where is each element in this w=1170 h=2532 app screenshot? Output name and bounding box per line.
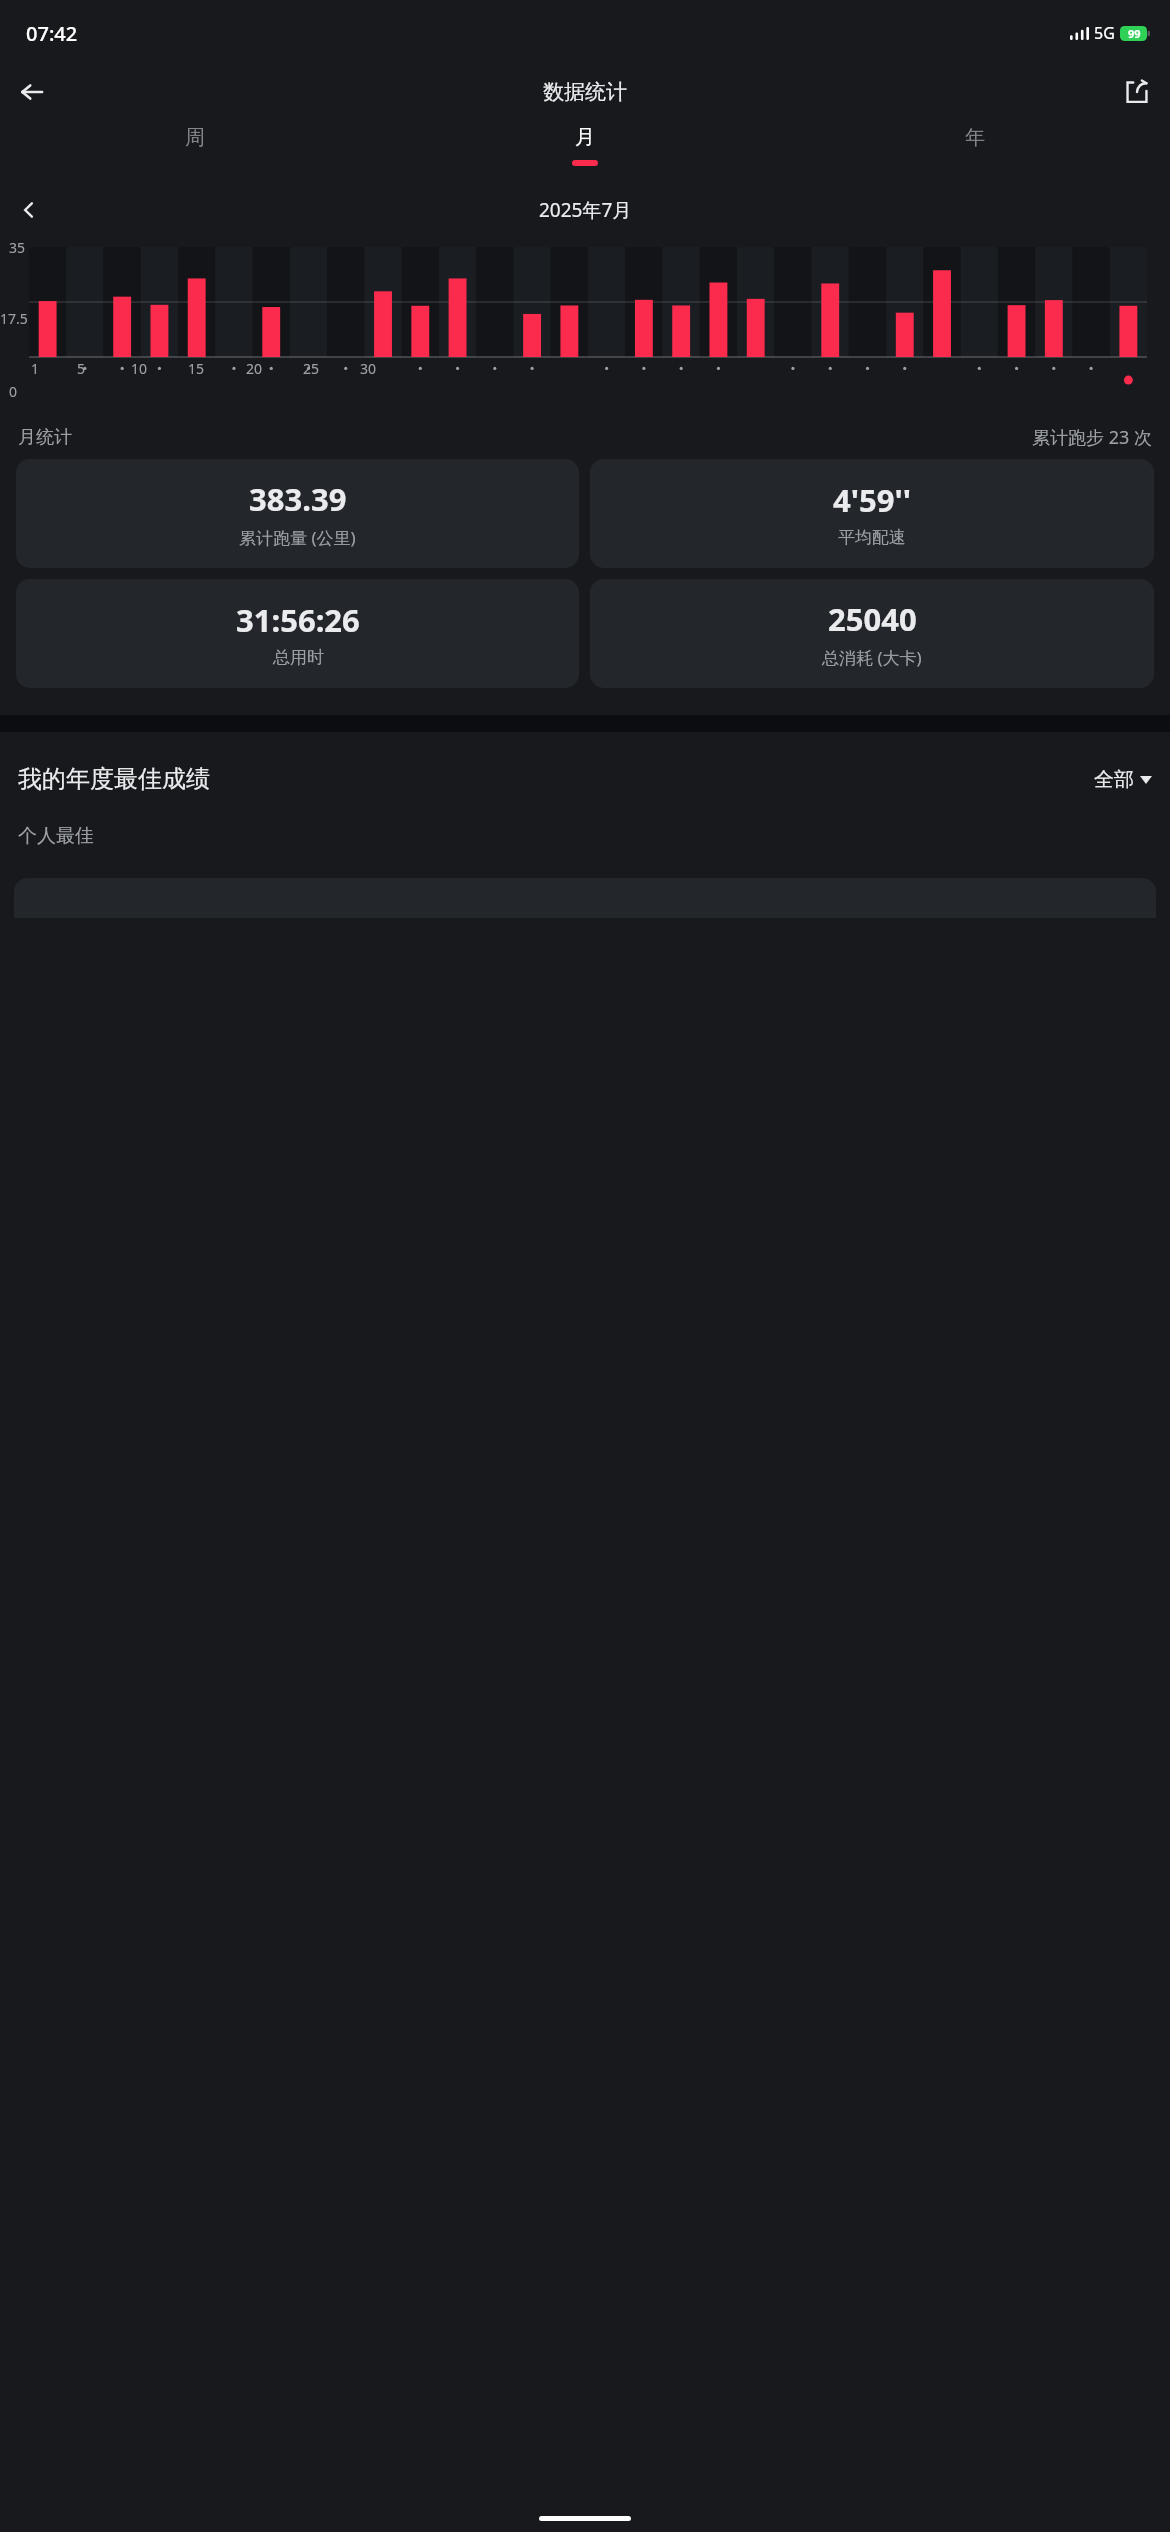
staticText: 全部 <box>1094 767 1134 792</box>
button[interactable]: 全部 <box>1094 767 1152 792</box>
button[interactable]: 周 <box>0 122 390 183</box>
staticText: 0 <box>9 382 18 401</box>
staticText: 25040 <box>828 598 917 640</box>
staticText: 月 <box>575 125 595 150</box>
staticText: 年 <box>965 125 985 150</box>
staticText: 383.39 <box>249 478 347 520</box>
staticText: 总用时 <box>273 647 324 668</box>
staticText: 我的年度最佳成绩 <box>18 764 210 794</box>
staticText: 10 <box>131 359 148 378</box>
staticText: 累计跑步 23 次 <box>1032 425 1152 450</box>
staticText: 平均配速 <box>838 527 906 548</box>
staticText: 4'59'' <box>833 479 911 521</box>
button[interactable]: 月 <box>390 122 780 183</box>
staticText: 99 <box>1128 26 1141 41</box>
button[interactable]: 25040 <box>590 579 1154 688</box>
staticText: 30 <box>360 359 377 378</box>
staticText: 25 <box>303 359 320 378</box>
staticText: 数据统计 <box>543 79 627 105</box>
staticText: 17.5 <box>0 309 28 328</box>
staticText: 总消耗 (大卡) <box>822 646 922 669</box>
button[interactable]: Share <box>1112 67 1162 117</box>
staticText: 07:42 <box>26 20 78 47</box>
button[interactable]: Back <box>6 66 58 118</box>
staticText: 20 <box>246 359 263 378</box>
staticText: 周 <box>185 125 205 150</box>
staticText: 35 <box>9 238 26 257</box>
staticText: 31:56:26 <box>236 599 360 641</box>
button[interactable]: 年 <box>780 122 1170 183</box>
staticText: 5G <box>1094 22 1115 44</box>
button[interactable]: 383.39 <box>16 459 579 568</box>
staticText: 1 <box>31 359 40 378</box>
button[interactable]: 4'59'' <box>590 459 1154 568</box>
button[interactable]: 31:56:26 <box>16 579 579 688</box>
button[interactable]: Previous month <box>6 187 52 233</box>
staticText: 累计跑量 (公里) <box>239 526 356 549</box>
staticText: 2025年7月 <box>539 197 632 223</box>
staticText: 5 <box>77 359 86 378</box>
staticText: 15 <box>188 359 205 378</box>
staticText: 个人最佳 <box>18 824 94 848</box>
staticText: 月统计 <box>18 426 72 449</box>
